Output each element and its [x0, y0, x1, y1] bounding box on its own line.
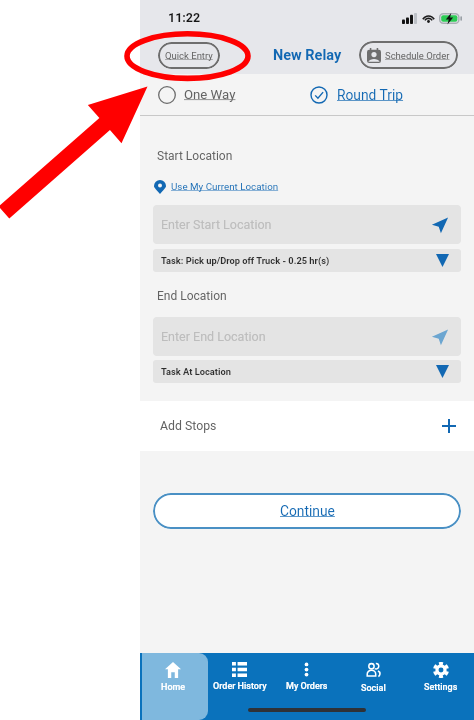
staticText: Task: Pick up/Drop off Truck - 0.25 hr(s…	[161, 255, 330, 266]
button[interactable]: Use My Current Location	[154, 179, 279, 194]
button[interactable]: Schedule Order	[359, 41, 458, 69]
staticText: Order History	[213, 681, 267, 692]
staticText: Continue	[280, 503, 335, 519]
staticText: One Way	[184, 87, 236, 102]
button[interactable]: Enter End Location	[153, 317, 461, 356]
button[interactable]: Add Stops	[140, 401, 474, 451]
staticText: End Location	[157, 289, 227, 303]
button[interactable]: Quick Entry	[158, 42, 220, 69]
staticText: New Relay	[273, 47, 342, 64]
button[interactable]: Settings	[407, 653, 474, 720]
staticText: Quick Entry	[165, 50, 213, 61]
staticText: Settings	[424, 682, 458, 693]
staticText: Enter End Location	[161, 329, 266, 344]
staticText: 11:22	[168, 10, 201, 25]
button[interactable]: Enter Start Location	[153, 205, 461, 244]
staticText: My Orders	[286, 681, 328, 692]
staticText: Schedule Order	[385, 50, 450, 61]
staticText: Use My Current Location	[171, 181, 279, 192]
staticText: Enter Start Location	[161, 217, 272, 232]
staticText: Social	[361, 683, 386, 694]
button[interactable]: My Orders	[273, 653, 340, 720]
button[interactable]: Task At Location	[153, 360, 461, 383]
button[interactable]: Task: Pick up/Drop off Truck - 0.25 hr(s…	[153, 249, 461, 272]
staticText: Start Location	[157, 149, 233, 163]
button[interactable]: Home	[140, 653, 206, 720]
staticText: Home	[161, 682, 186, 693]
staticText: Add Stops	[160, 419, 217, 433]
button[interactable]: One Way	[140, 74, 307, 115]
staticText: Task At Location	[161, 366, 231, 377]
staticText: Round Trip	[337, 87, 404, 103]
other: Add stop	[442, 419, 456, 433]
button[interactable]: Social	[340, 653, 407, 720]
button[interactable]: Round Trip	[307, 74, 474, 115]
button[interactable]: Continue	[153, 493, 461, 529]
button[interactable]: Order History	[206, 653, 273, 720]
